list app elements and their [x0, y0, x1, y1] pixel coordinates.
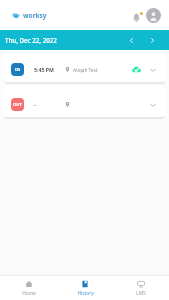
staticText: Thu, Dec 22, 2022: [5, 36, 57, 44]
staticText: worksy: [23, 11, 47, 20]
staticText: History: [77, 290, 94, 297]
staticText: -: [34, 101, 36, 108]
staticText: 5:45 PM: [34, 66, 54, 73]
staticText: OUT: [13, 102, 22, 108]
button[interactable]: Home: [0, 276, 57, 300]
button[interactable]: Notifications: [129, 8, 145, 24]
button[interactable]: Profile: [146, 8, 161, 23]
button[interactable]: Expand: [147, 99, 158, 110]
button[interactable]: Next day: [145, 33, 159, 47]
staticText: LMS: [136, 290, 146, 297]
staticText: IN: [15, 67, 21, 73]
button[interactable]: History: [57, 276, 113, 300]
staticText: Atiqah Test: [73, 67, 98, 73]
button[interactable]: LMS: [113, 276, 169, 300]
button[interactable]: Previous day: [124, 33, 138, 47]
button[interactable]: IN: [4, 51, 165, 82]
staticText: Home: [22, 290, 36, 297]
button[interactable]: Expand: [147, 64, 158, 75]
button[interactable]: OUT: [4, 86, 165, 117]
